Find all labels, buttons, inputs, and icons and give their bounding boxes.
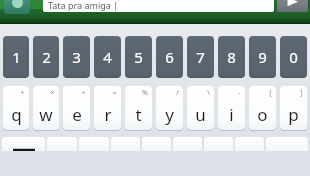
button[interactable]: = bbox=[94, 86, 121, 130]
button[interactable] bbox=[235, 137, 264, 151]
staticText: q bbox=[11, 103, 22, 126]
button[interactable]: 4 bbox=[94, 36, 121, 78]
staticText: t bbox=[135, 103, 142, 126]
button[interactable]: × bbox=[33, 86, 59, 130]
button[interactable]: 9 bbox=[249, 36, 276, 78]
staticText: o bbox=[257, 103, 268, 126]
button[interactable]: Tata pra amiga | bbox=[43, 0, 274, 12]
button[interactable]: Send bbox=[277, 0, 308, 12]
button[interactable] bbox=[173, 137, 202, 151]
button[interactable]: / bbox=[156, 86, 183, 130]
staticText: + bbox=[20, 88, 25, 98]
staticText: Tata pra amiga | bbox=[48, 0, 119, 11]
button[interactable]: 7 bbox=[187, 36, 214, 78]
staticText: 9 bbox=[258, 47, 267, 67]
button[interactable]: Emoji bbox=[4, 0, 30, 14]
staticText: 2 bbox=[42, 47, 51, 67]
button[interactable]: 8 bbox=[218, 36, 245, 78]
button[interactable]: % bbox=[125, 86, 152, 130]
staticText: 1 bbox=[12, 47, 21, 67]
staticText: [ bbox=[269, 88, 272, 98]
staticText: e bbox=[72, 103, 82, 126]
button[interactable] bbox=[204, 137, 233, 151]
button[interactable]: 2 bbox=[33, 36, 59, 78]
staticText: / bbox=[176, 88, 179, 98]
staticText: ] bbox=[300, 88, 303, 98]
button[interactable]: + bbox=[3, 86, 29, 130]
button[interactable]: 3 bbox=[63, 36, 90, 78]
button[interactable]: [ bbox=[249, 86, 276, 130]
button[interactable]: Backspace bbox=[266, 137, 308, 151]
staticText: = bbox=[112, 88, 117, 98]
button[interactable] bbox=[79, 137, 109, 151]
button[interactable]: 5 bbox=[125, 36, 152, 78]
button[interactable] bbox=[47, 137, 77, 151]
staticText: 6 bbox=[165, 47, 174, 67]
staticText: % bbox=[142, 88, 148, 98]
staticText: 0 bbox=[289, 47, 298, 67]
staticText: u bbox=[195, 103, 206, 126]
button[interactable]: Shift bbox=[2, 137, 45, 151]
staticText: 4 bbox=[103, 47, 112, 67]
button[interactable]: 1 bbox=[3, 36, 29, 78]
button[interactable]: 0 bbox=[280, 36, 307, 78]
button[interactable]: - bbox=[218, 86, 245, 130]
staticText: 3 bbox=[72, 47, 81, 67]
staticText: 7 bbox=[196, 47, 205, 67]
button[interactable]: ÷ bbox=[63, 86, 90, 130]
button[interactable]: \ bbox=[187, 86, 214, 130]
staticText: w bbox=[39, 103, 53, 126]
staticText: \ bbox=[207, 88, 210, 98]
staticText: i bbox=[229, 103, 234, 126]
staticText: × bbox=[50, 88, 55, 98]
button[interactable]: ] bbox=[280, 86, 307, 130]
staticText: ÷ bbox=[81, 88, 86, 98]
staticText: y bbox=[165, 103, 174, 126]
staticText: p bbox=[288, 103, 299, 126]
button[interactable] bbox=[142, 137, 171, 151]
staticText: 5 bbox=[134, 47, 143, 67]
button[interactable] bbox=[111, 137, 140, 151]
staticText: 8 bbox=[227, 47, 236, 67]
staticText: - bbox=[238, 88, 241, 98]
staticText: r bbox=[104, 103, 112, 126]
button[interactable]: 6 bbox=[156, 36, 183, 78]
